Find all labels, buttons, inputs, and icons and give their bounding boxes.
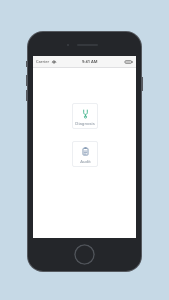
staticText: Audit [80,159,91,165]
staticText: 9:41 AM [82,59,98,64]
button[interactable]: Diagnosis [72,103,98,129]
button[interactable]: Audit [72,141,98,167]
button[interactable]: Home [74,244,95,265]
staticText: Diagnosis [75,121,95,127]
staticText: Carrier [36,59,50,64]
